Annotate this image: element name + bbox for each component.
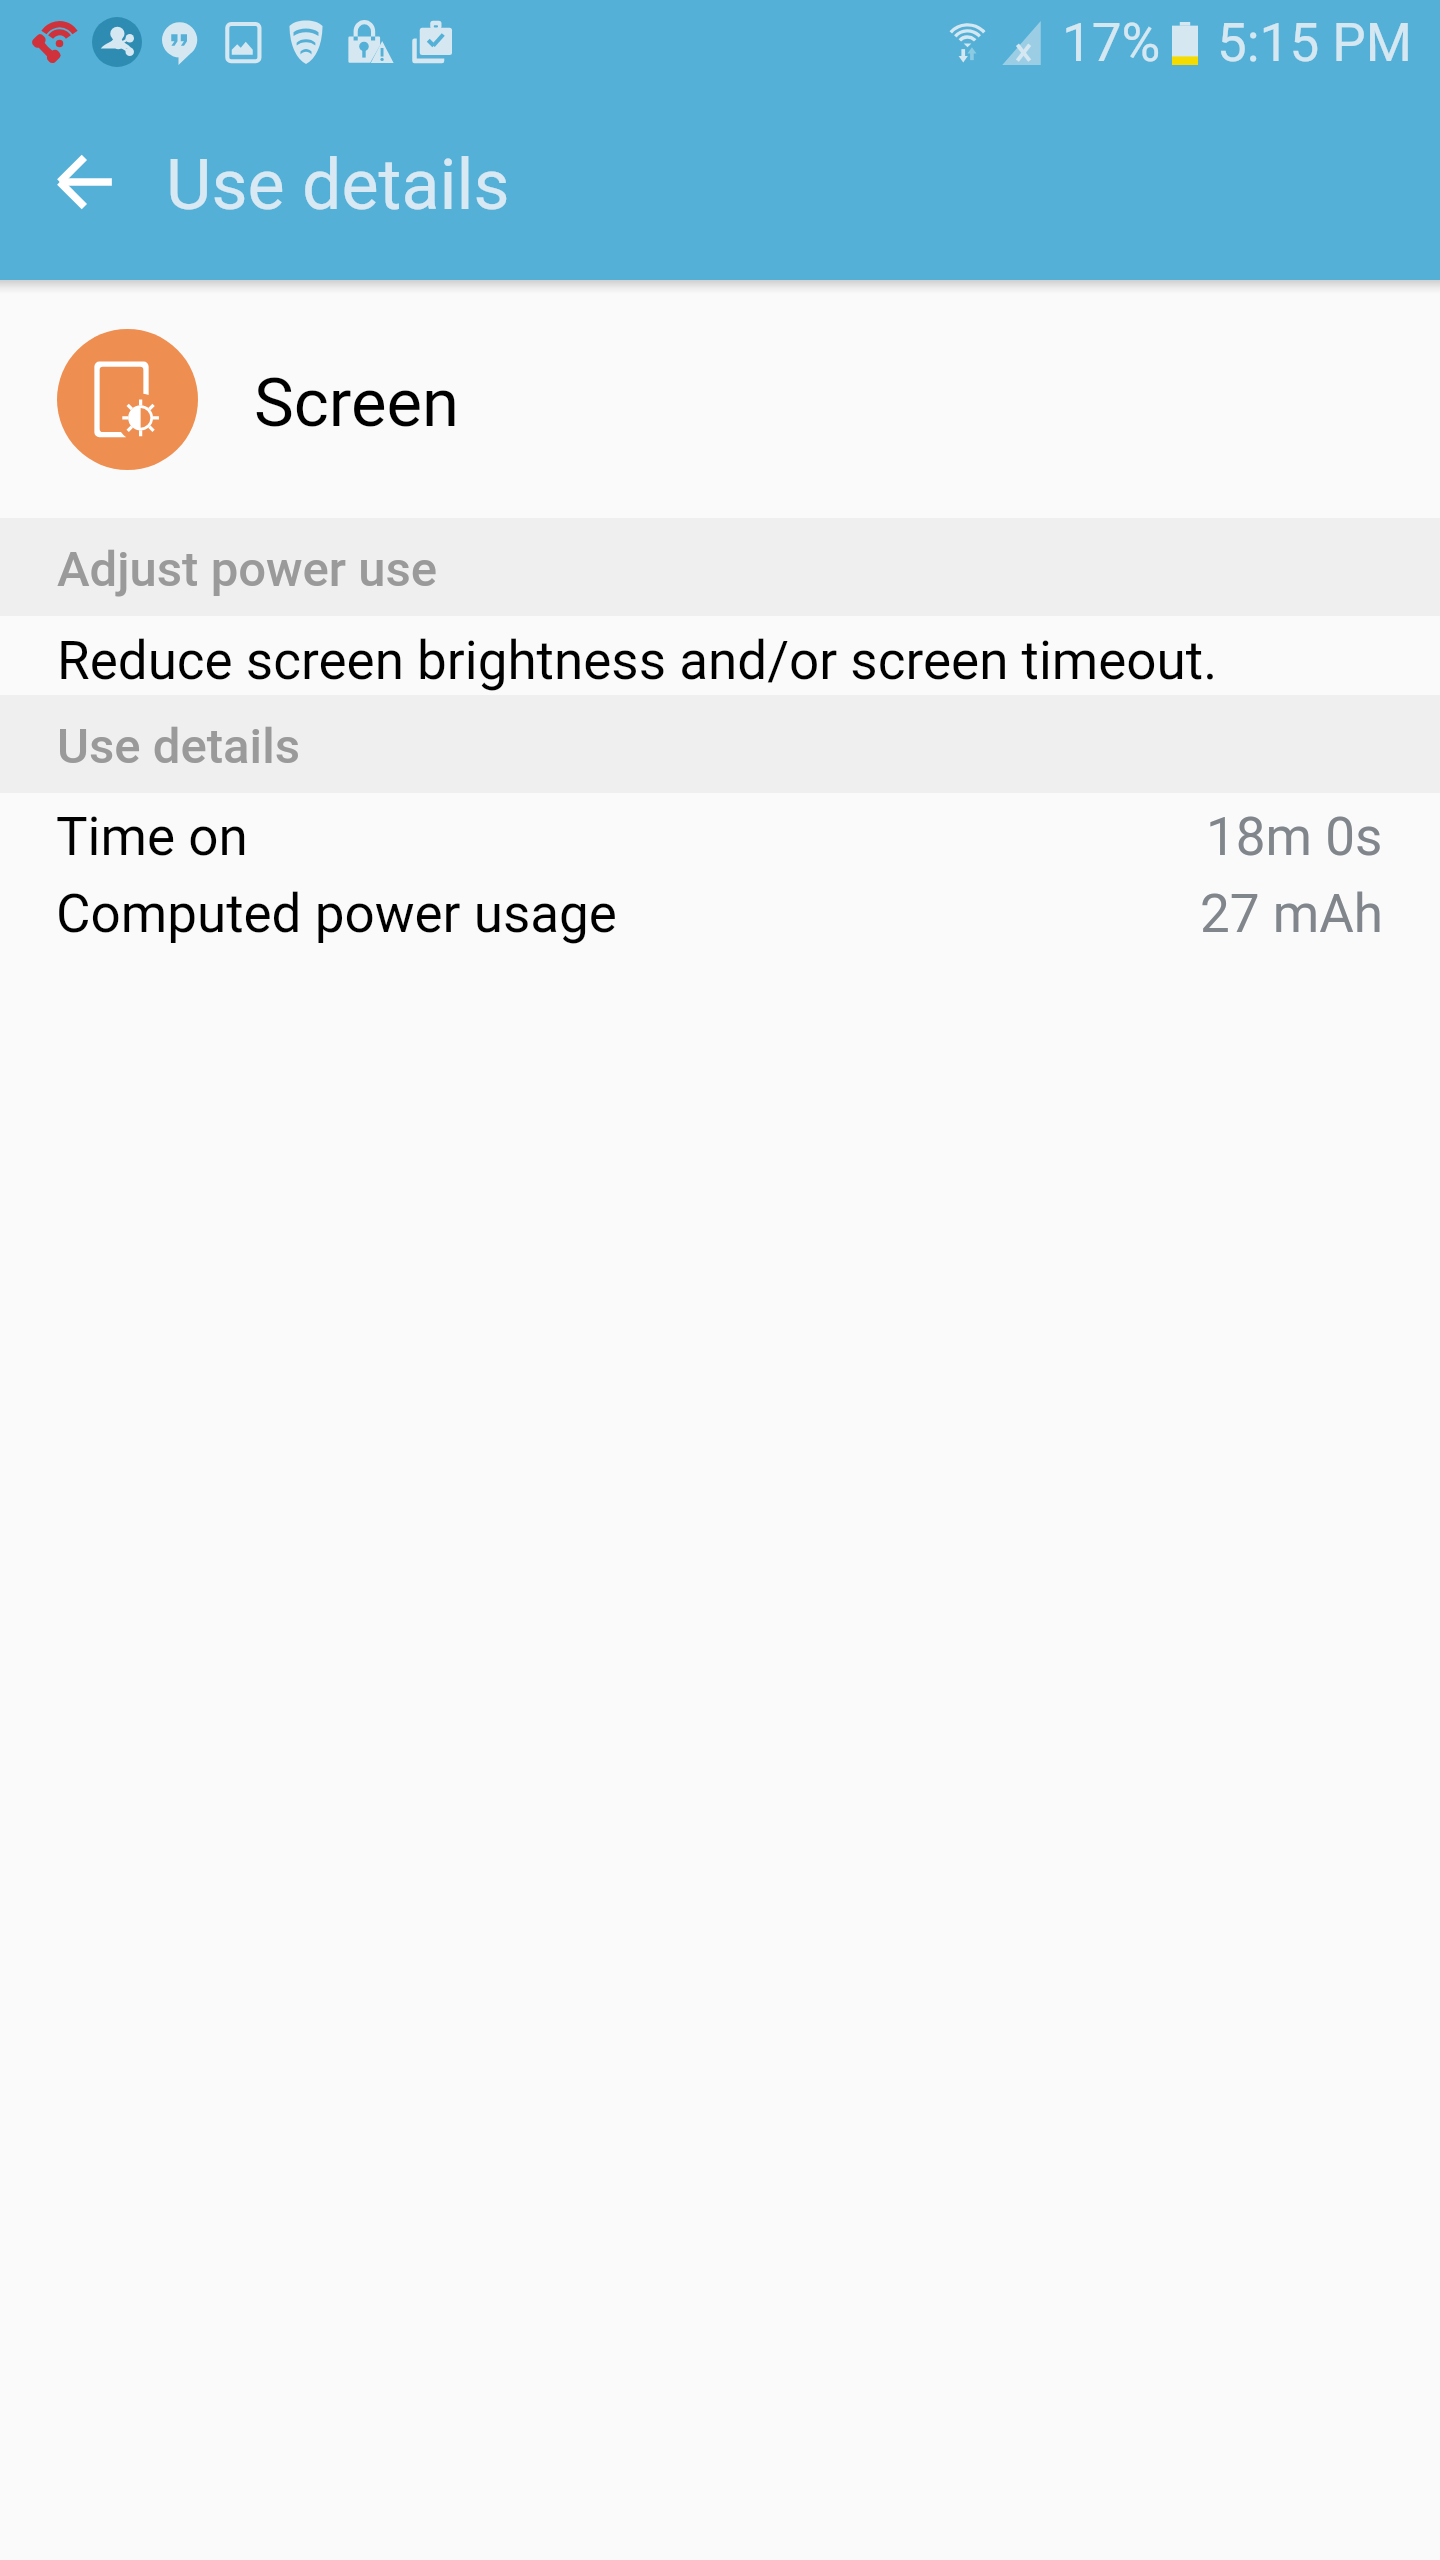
button[interactable]: Screen (0, 280, 1440, 518)
staticText: Adjust power use (57, 541, 438, 598)
staticText: Computed power usage (56, 883, 617, 945)
staticText: Use details (166, 144, 510, 226)
staticText: Screen (254, 364, 459, 443)
staticText: 27 mAh (1200, 883, 1383, 945)
staticText: Time on (56, 806, 248, 868)
staticText: Use details (57, 718, 300, 775)
staticText: 18m 0s (1206, 806, 1383, 868)
button[interactable]: Navigate up (28, 126, 140, 238)
staticText: Reduce screen brightness and/or screen t… (57, 630, 1218, 692)
staticText: 17% (1062, 12, 1161, 74)
staticText: 5:15 PM (1217, 12, 1413, 74)
button[interactable]: Time on (0, 793, 1440, 870)
button[interactable]: Computed power usage (0, 870, 1440, 947)
button[interactable]: Reduce screen brightness and/or screen t… (0, 616, 1440, 695)
